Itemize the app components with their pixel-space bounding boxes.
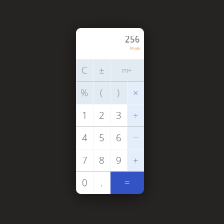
staticText: 3 — [116, 109, 121, 121]
button[interactable]: 8 — [93, 149, 110, 171]
staticText: ÷ — [133, 109, 138, 121]
staticText: 256 — [125, 34, 140, 45]
staticText: 4 — [82, 132, 87, 144]
button[interactable]: 2 — [93, 104, 110, 126]
button[interactable]: % — [76, 81, 93, 104]
staticText: + — [133, 154, 138, 166]
staticText: m+ — [122, 66, 132, 75]
button[interactable]: C — [76, 59, 93, 81]
button[interactable]: ( — [93, 81, 110, 104]
staticText: ± — [99, 64, 104, 76]
staticText: 8 — [99, 154, 104, 166]
staticText: 0 — [82, 177, 87, 189]
staticText: 1 — [82, 109, 87, 121]
button[interactable]: 7 — [76, 149, 93, 171]
staticText: C — [81, 64, 87, 76]
staticText: Mode — [130, 46, 140, 51]
button[interactable]: ÷ — [127, 104, 144, 126]
staticText: 6 — [116, 132, 121, 144]
staticText: ( — [100, 87, 103, 99]
button[interactable]: ) — [110, 81, 127, 104]
button[interactable]: 5 — [93, 126, 110, 149]
button[interactable]: = — [110, 171, 144, 194]
staticText: 7 — [82, 154, 87, 166]
button[interactable]: 4 — [76, 126, 93, 149]
button[interactable]: 9 — [110, 149, 127, 171]
button[interactable]: − — [127, 126, 144, 149]
staticText: ) — [117, 87, 120, 99]
button[interactable]: 3 — [110, 104, 127, 126]
button[interactable]: 0 — [76, 171, 93, 194]
button[interactable]: 1 — [76, 104, 93, 126]
staticText: 9 — [116, 154, 121, 166]
button[interactable]: ± — [93, 59, 110, 81]
staticText: . — [100, 177, 102, 189]
staticText: × — [133, 87, 138, 99]
button[interactable]: × — [127, 81, 144, 104]
button[interactable]: + — [127, 149, 144, 171]
button[interactable]: m+ — [110, 59, 144, 81]
button[interactable]: 6 — [110, 126, 127, 149]
button[interactable]: . — [93, 171, 110, 194]
staticText: % — [80, 87, 88, 99]
staticText: 2 — [99, 109, 104, 121]
staticText: = — [124, 177, 129, 189]
staticText: 5 — [99, 132, 104, 144]
staticText: − — [133, 132, 138, 144]
